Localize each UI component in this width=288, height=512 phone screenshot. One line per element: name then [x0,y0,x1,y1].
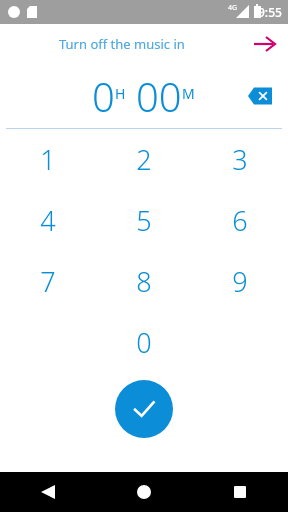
staticText: 1 [40,141,56,178]
button[interactable]: Recent apps [192,472,288,512]
button[interactable]: 2 [96,129,192,190]
staticText: 00 [136,69,182,123]
staticText: 4G [228,3,238,13]
staticText: 5 [136,202,152,239]
button[interactable]: Turn off the music in [55,31,189,57]
staticText: M [182,84,195,103]
button[interactable]: Backspace [242,78,278,114]
button[interactable]: 6 [192,190,288,251]
staticText: 2 [136,141,152,178]
staticText: 7 [40,263,56,300]
button[interactable]: 4 [0,190,96,251]
button[interactable]: 5 [96,190,192,251]
staticText: 0 [136,324,152,361]
button[interactable]: 8 [96,251,192,312]
button[interactable]: 9 [192,251,288,312]
staticText: 0 [92,69,115,123]
button[interactable]: 7 [0,251,96,312]
staticText: 9 [232,263,248,300]
button[interactable]: Confirm [115,380,173,438]
staticText: 3 [232,141,248,178]
button[interactable]: 1 [0,129,96,190]
staticText: H [115,84,126,103]
staticText: 9:55 [258,4,282,20]
button[interactable]: 3 [192,129,288,190]
button[interactable]: Back [0,472,96,512]
button[interactable]: Home [96,472,192,512]
staticText: 8 [136,263,152,300]
staticText: 4 [40,202,56,239]
staticText: 6 [232,202,248,239]
button[interactable]: 0 [96,312,192,373]
button[interactable]: Next [248,28,280,60]
